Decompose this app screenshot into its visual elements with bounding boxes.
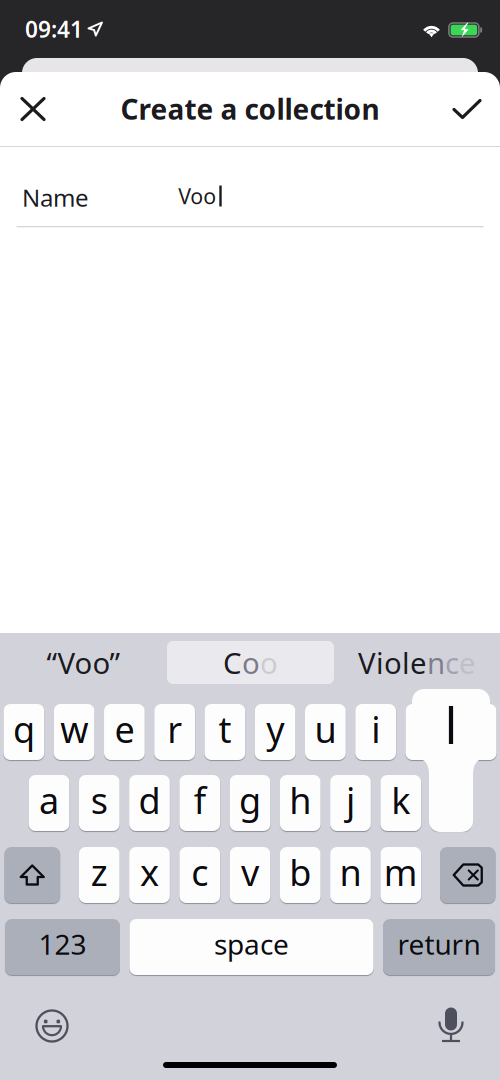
staticText: w: [60, 705, 88, 753]
button[interactable]: return: [383, 919, 495, 975]
staticText: return: [398, 925, 481, 963]
button[interactable]: Dictate: [436, 1007, 466, 1045]
staticText: n: [427, 643, 445, 682]
button[interactable]: c: [179, 847, 220, 903]
staticText: b: [289, 848, 311, 896]
staticText: n: [339, 848, 361, 896]
button[interactable]: m: [380, 847, 421, 903]
staticText: f: [194, 776, 206, 824]
button[interactable]: h: [280, 775, 321, 831]
button[interactable]: C: [167, 641, 334, 684]
staticText: r: [167, 705, 182, 753]
button[interactable]: o: [405, 704, 446, 760]
staticText: g: [239, 776, 261, 824]
button[interactable]: Viole: [334, 639, 500, 685]
button[interactable]: g: [230, 775, 270, 831]
button[interactable]: k: [380, 775, 421, 831]
staticText: o: [260, 643, 278, 682]
staticText: m: [384, 848, 418, 896]
staticText: Create a collection: [120, 90, 379, 128]
button[interactable]: “Voo”: [0, 639, 167, 685]
button[interactable]: Close: [0, 72, 66, 146]
staticText: space: [214, 925, 289, 963]
staticText: v: [241, 848, 259, 896]
button[interactable]: y: [255, 704, 295, 760]
staticText: o: [242, 643, 260, 682]
button[interactable]: Name: [0, 147, 500, 226]
button[interactable]: v: [230, 847, 270, 903]
button[interactable]: j: [330, 775, 371, 831]
button[interactable]: 123: [5, 919, 120, 975]
staticText: q: [13, 705, 35, 753]
staticText: j: [346, 776, 355, 824]
button[interactable]: a: [29, 775, 69, 831]
staticText: C: [223, 643, 242, 682]
staticText: i: [371, 705, 380, 753]
staticText: t: [218, 705, 231, 753]
staticText: “Voo”: [46, 643, 120, 682]
staticText: y: [266, 705, 284, 753]
button[interactable]: z: [79, 847, 120, 903]
staticText: Viole: [358, 643, 427, 682]
staticText: 123: [38, 925, 86, 963]
button[interactable]: l: [431, 775, 471, 831]
staticText: h: [289, 776, 311, 824]
staticText: Name: [22, 182, 89, 213]
button[interactable]: Save: [434, 72, 500, 146]
staticText: c: [445, 643, 459, 682]
button[interactable]: r: [154, 704, 195, 760]
button[interactable]: q: [3, 704, 44, 760]
button[interactable]: n: [330, 847, 371, 903]
staticText: d: [138, 776, 160, 824]
button[interactable]: Emoji: [34, 1008, 70, 1044]
staticText: 09:41: [25, 14, 83, 44]
button[interactable]: e: [104, 704, 145, 760]
staticText: c: [191, 848, 208, 896]
button[interactable]: b: [280, 847, 321, 903]
staticText: s: [91, 776, 108, 824]
staticText: k: [391, 776, 410, 824]
button[interactable]: space: [129, 919, 373, 975]
button[interactable]: w: [54, 704, 94, 760]
staticText: z: [91, 848, 108, 896]
staticText: a: [39, 776, 59, 824]
button[interactable]: x: [129, 847, 170, 903]
button[interactable]: Delete: [440, 847, 495, 903]
button[interactable]: p: [456, 704, 496, 760]
staticText: e: [459, 643, 476, 682]
button[interactable]: t: [204, 704, 245, 760]
button[interactable]: d: [129, 775, 170, 831]
staticText: x: [140, 848, 159, 896]
button[interactable]: Shift: [4, 847, 60, 903]
button[interactable]: u: [305, 704, 346, 760]
staticText: e: [114, 705, 134, 753]
button[interactable]: i: [355, 704, 396, 760]
button[interactable]: f: [179, 775, 220, 831]
button[interactable]: s: [79, 775, 120, 831]
staticText: u: [314, 705, 336, 753]
staticText: Voo: [178, 182, 216, 210]
